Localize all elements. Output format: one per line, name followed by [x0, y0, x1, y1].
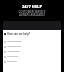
button[interactable]	[4, 59, 60, 64]
staticText: ALWAYS AVAILABLE	[0, 13, 64, 17]
button[interactable]: How can we help?	[4, 32, 60, 36]
button[interactable]	[4, 39, 60, 44]
button[interactable]	[4, 54, 60, 59]
staticText: How can we help?	[7, 32, 31, 36]
button[interactable]	[4, 44, 60, 49]
staticText: CUSTOMER SERVICE	[0, 10, 64, 14]
button[interactable]	[4, 49, 60, 54]
staticText: 24/7 HELP	[0, 4, 64, 9]
